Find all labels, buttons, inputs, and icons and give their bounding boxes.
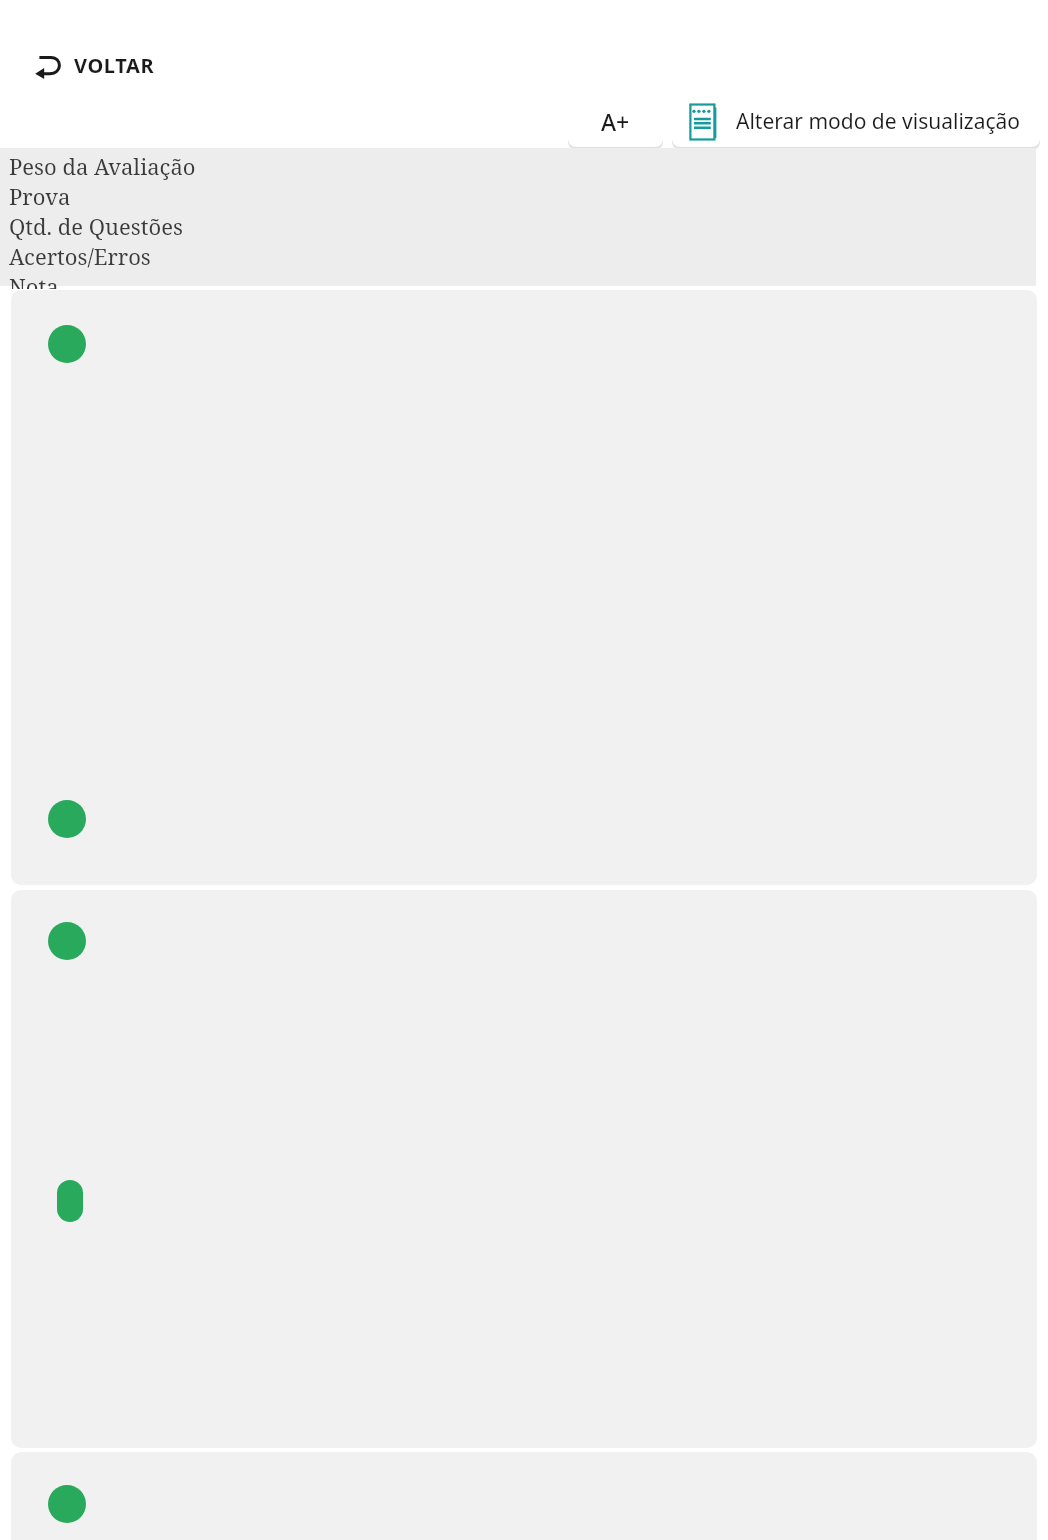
staticText: Qtd. de Questões — [9, 211, 183, 241]
staticText: Prova — [9, 181, 71, 211]
other: Voltar — [34, 53, 64, 79]
staticText: Acertos/Erros — [9, 241, 151, 271]
staticText: Peso da Avaliação — [9, 151, 196, 181]
button[interactable]: Voltar — [30, 48, 159, 83]
button[interactable]: A+ — [568, 96, 663, 147]
staticText: A+ — [601, 106, 630, 137]
button[interactable] — [11, 1452, 1037, 1540]
button[interactable] — [11, 890, 1037, 1448]
staticText: Nota — [9, 271, 59, 289]
button[interactable]: Alterar modo de visualização — [672, 96, 1040, 147]
button[interactable] — [11, 290, 1037, 885]
staticText: Alterar modo de visualização — [736, 107, 1021, 136]
staticText: VOLTAR — [74, 52, 155, 79]
